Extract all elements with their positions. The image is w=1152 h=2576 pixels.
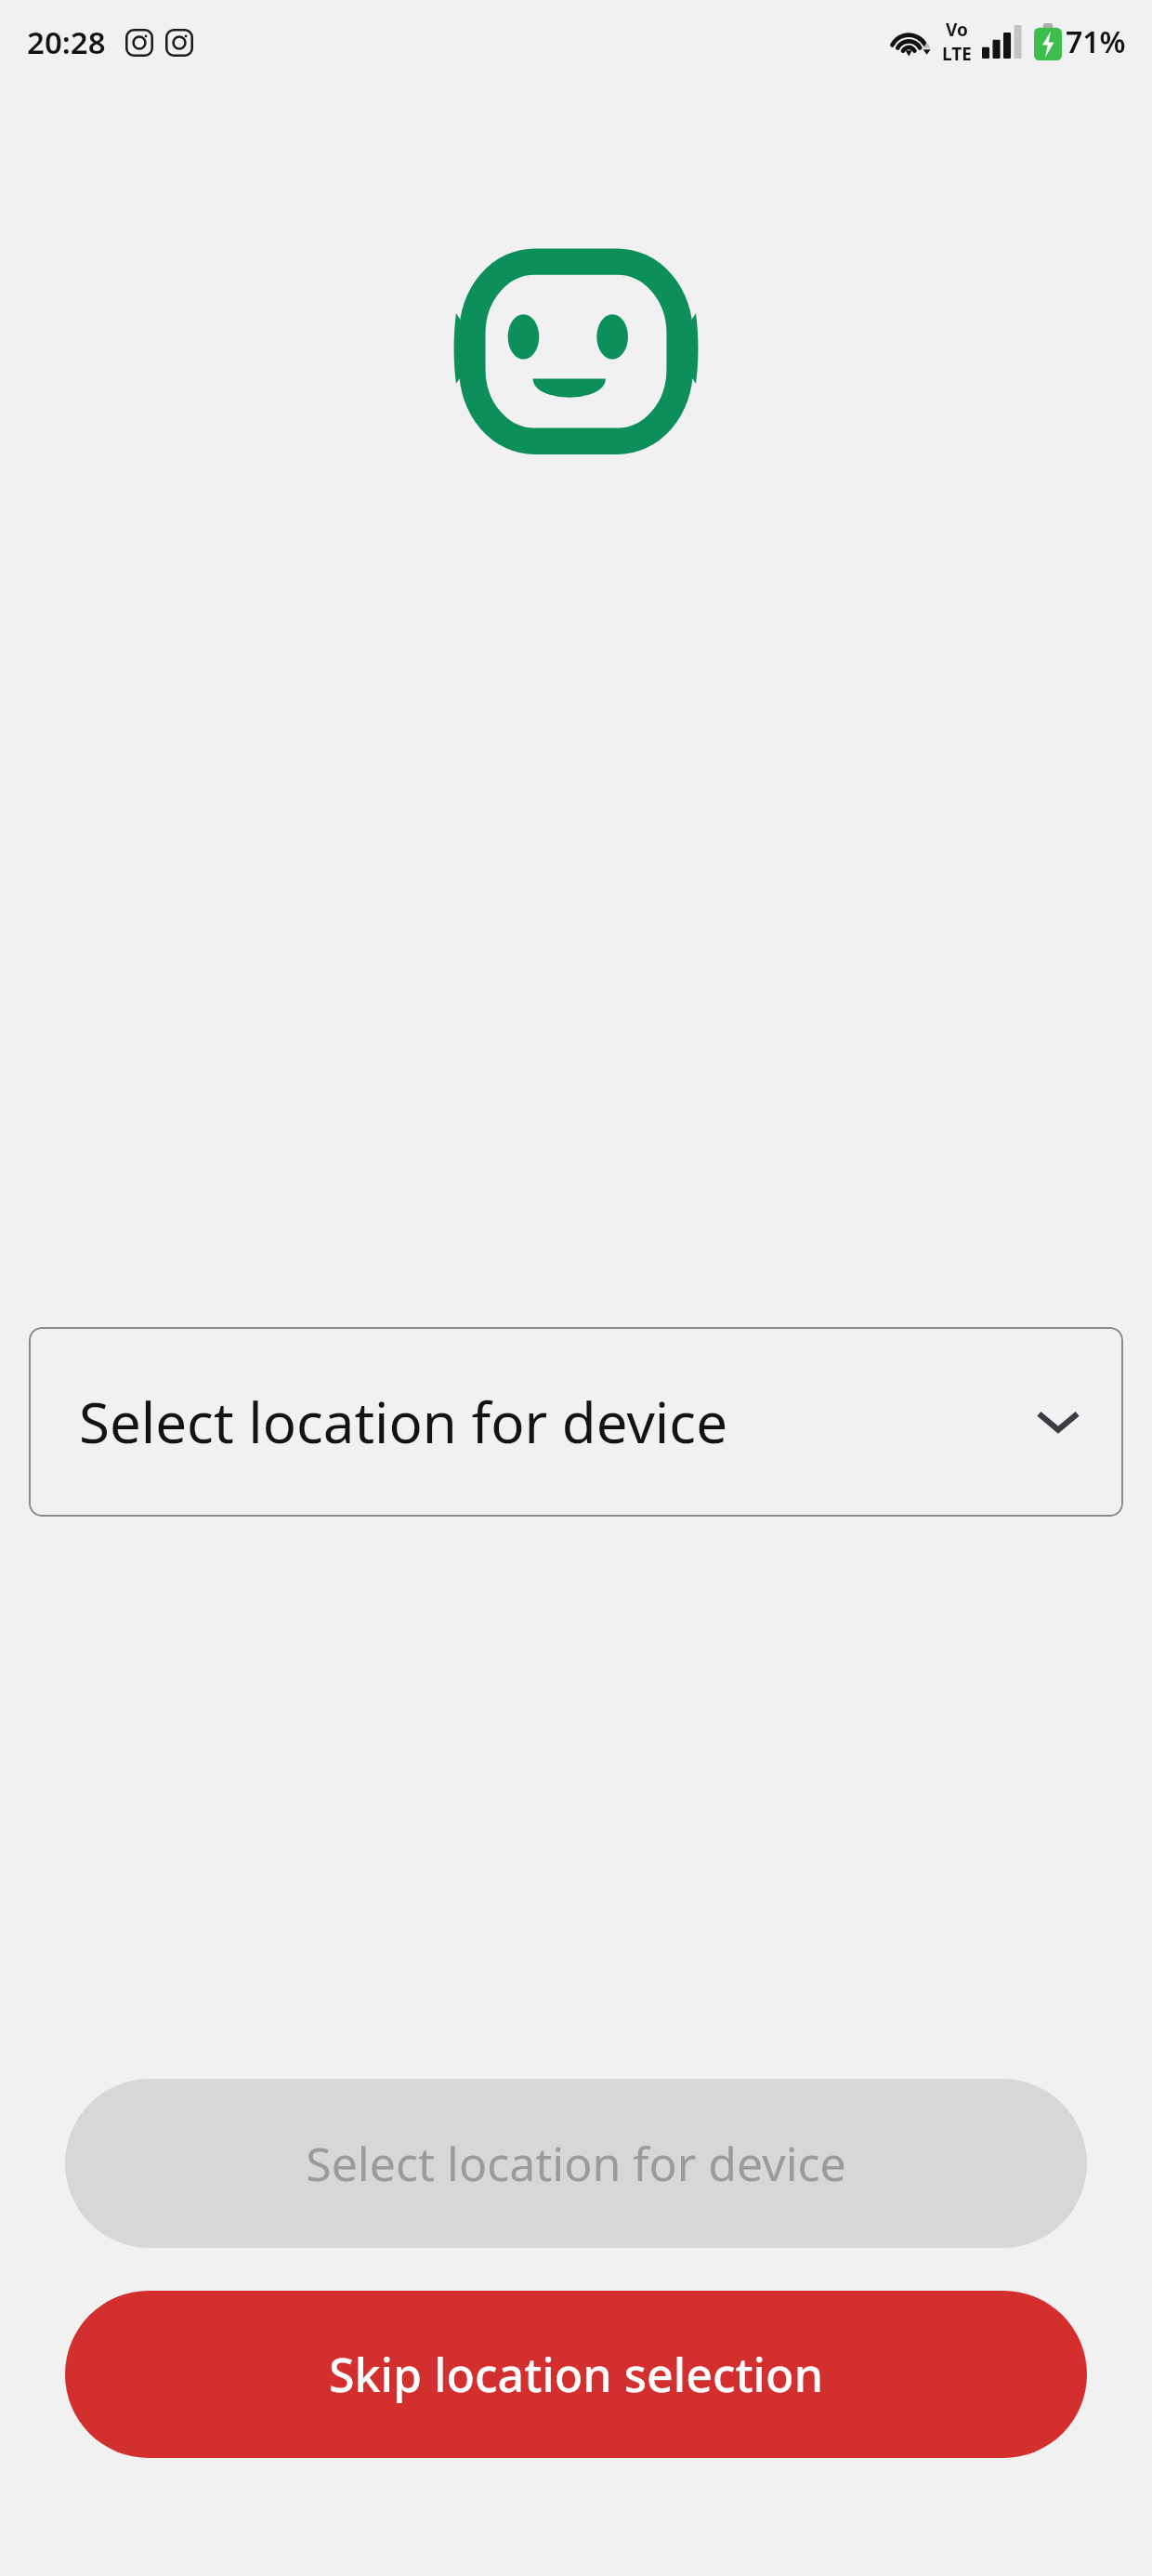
button[interactable]: Select location for device [65, 2079, 1087, 2248]
staticText: 20:28 [27, 21, 106, 63]
button[interactable]: Skip location selection [65, 2291, 1087, 2458]
other: Expand location list [1036, 1400, 1080, 1444]
staticText: Vo [946, 18, 968, 42]
staticText: Skip location selection [329, 2343, 823, 2406]
button[interactable]: Select location for device [29, 1327, 1123, 1517]
staticText: LTE [942, 42, 972, 66]
staticText: 71% [1066, 21, 1126, 62]
staticText: Select location for device [79, 1384, 727, 1460]
staticText: Select location for device [306, 2132, 846, 2195]
